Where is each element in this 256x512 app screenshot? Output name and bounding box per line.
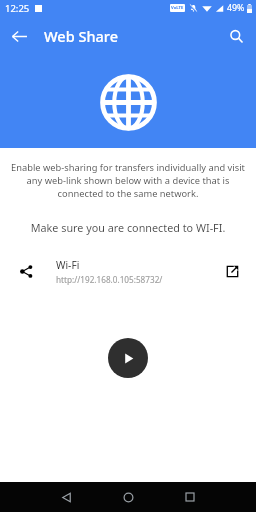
button[interactable]: Open in browser: [219, 258, 245, 284]
button[interactable]: Search: [222, 22, 250, 50]
staticText: Enable web-sharing for transfers individ…: [11, 161, 245, 200]
staticText: Web Share: [44, 26, 118, 46]
button[interactable]: Start sharing: [108, 338, 148, 378]
staticText: 12:25: [5, 2, 30, 15]
staticText: http://192.168.0.105:58732/: [56, 274, 163, 285]
staticText: 49%: [227, 2, 245, 14]
button[interactable]: Home: [112, 482, 144, 512]
button[interactable]: Back: [50, 482, 82, 512]
button[interactable]: Share link: [0, 249, 256, 293]
button[interactable]: Recent apps: [174, 482, 206, 512]
staticText: Make sure you are connected to WI-FI.: [11, 220, 245, 235]
staticText: Wi-Fi: [56, 258, 80, 272]
staticText: VoLTE: [171, 5, 184, 11]
button[interactable]: Share link: [13, 258, 39, 284]
button[interactable]: Back: [5, 22, 33, 50]
